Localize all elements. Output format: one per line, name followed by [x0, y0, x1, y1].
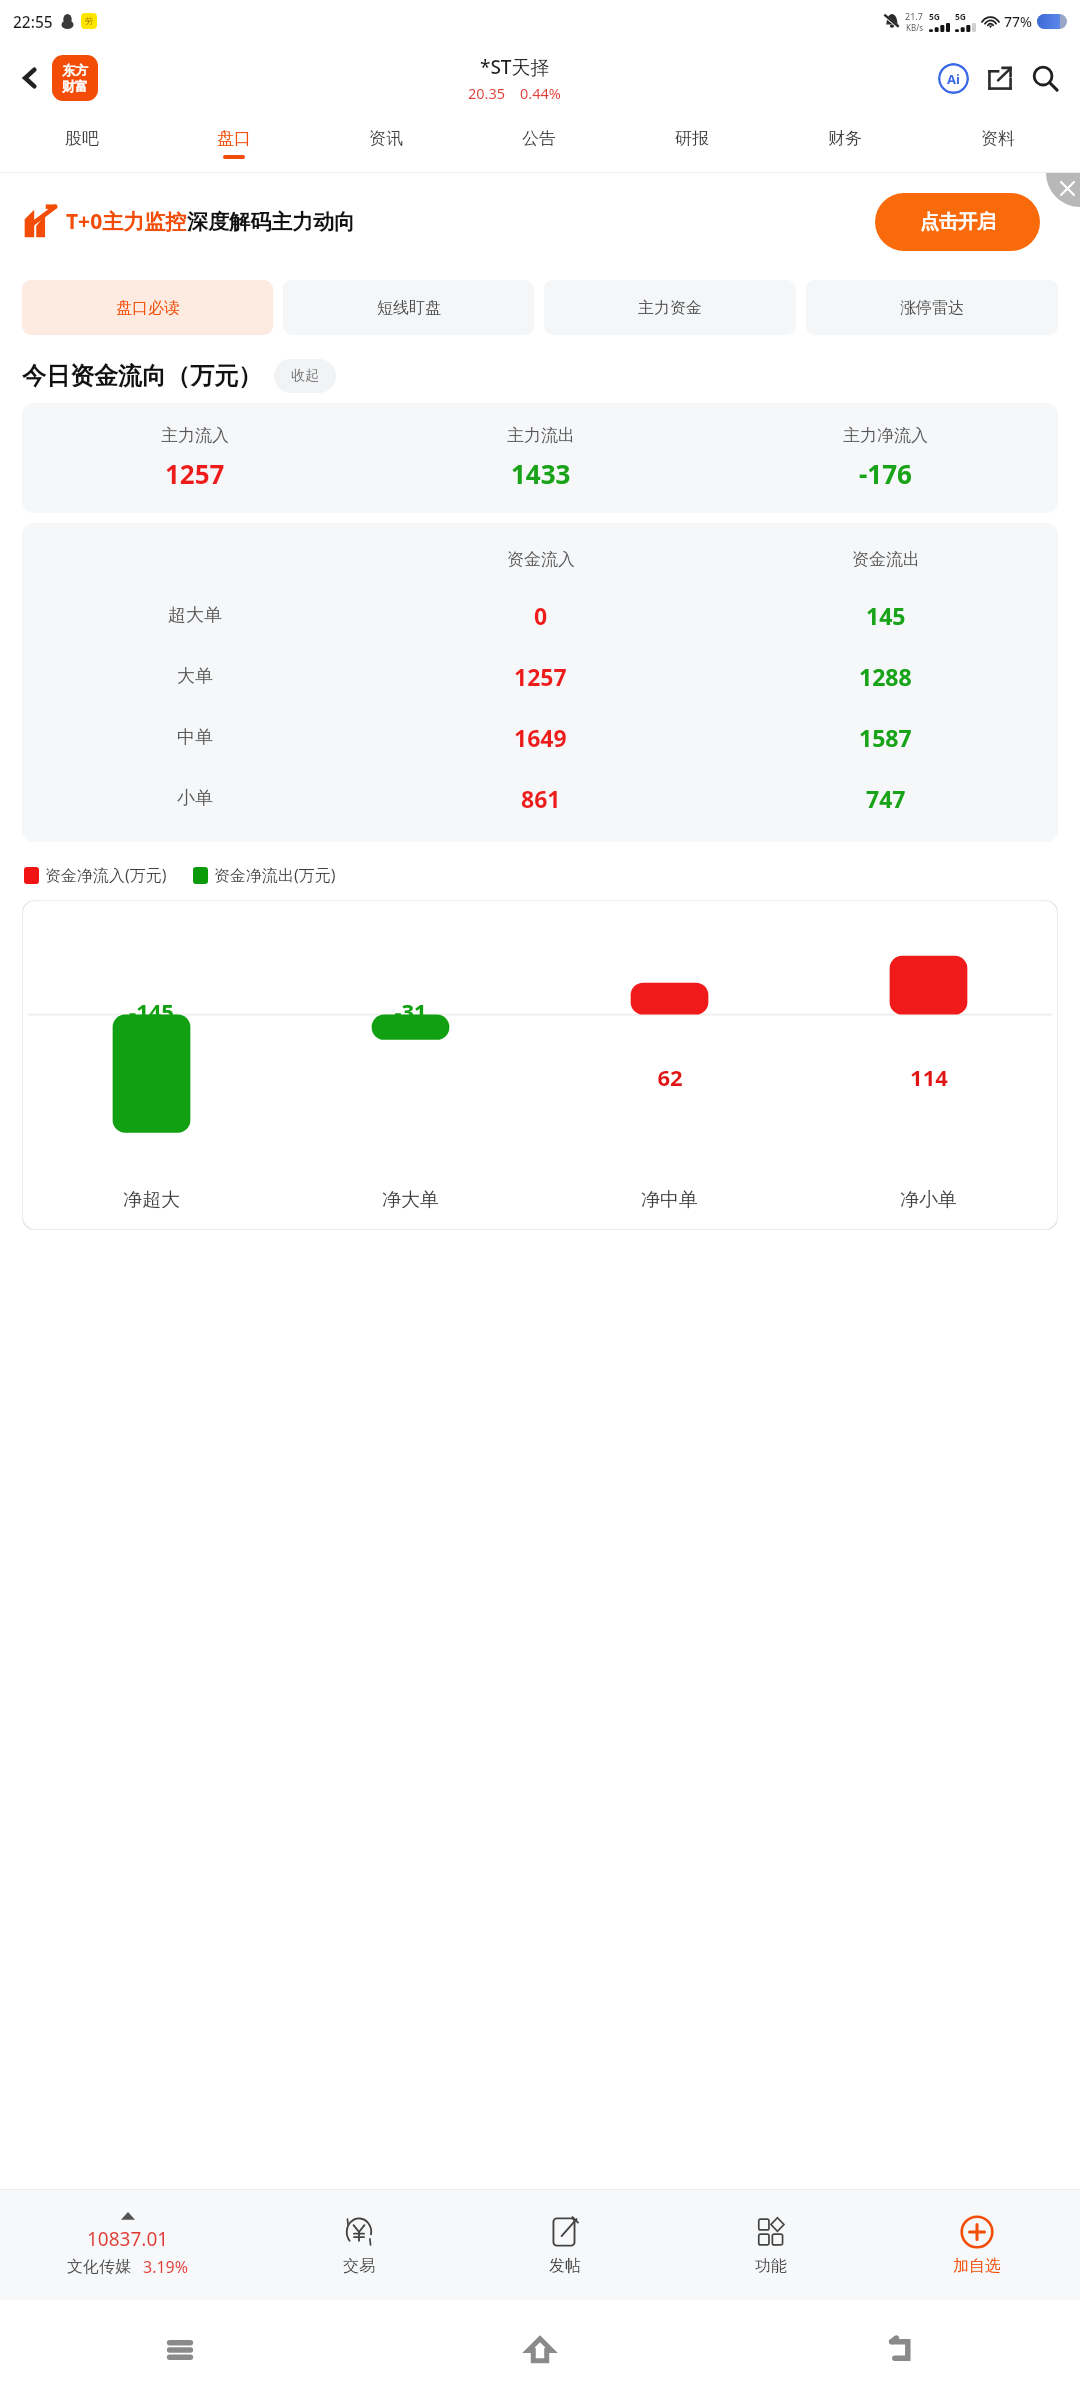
- staticText: 今日资金流向（万元）: [22, 361, 262, 391]
- staticText: 资金净流出(万元): [214, 864, 336, 886]
- button[interactable]: 交易: [256, 2190, 462, 2300]
- staticText: 62: [657, 1062, 683, 1092]
- staticText: 涨停雷达: [900, 298, 964, 318]
- staticText: Ai: [947, 70, 960, 88]
- button[interactable]: 收起: [274, 359, 336, 393]
- staticText: 盘口: [217, 128, 251, 149]
- staticText: 资料: [981, 128, 1015, 149]
- staticText: T+0主力监控: [66, 207, 187, 236]
- staticText: 77%: [1004, 12, 1032, 31]
- staticText: 文化传媒: [67, 2257, 131, 2277]
- button[interactable]: 研报: [615, 114, 768, 172]
- staticText: -31: [394, 996, 427, 1026]
- button[interactable]: Share: [980, 58, 1020, 98]
- staticText: 净超大: [123, 1188, 180, 1212]
- button[interactable]: 发帖: [462, 2190, 668, 2300]
- staticText: 小单: [177, 787, 213, 810]
- staticText: -176: [859, 456, 912, 491]
- staticText: 主力流出: [507, 425, 575, 446]
- staticText: 5G: [955, 11, 967, 23]
- staticText: 交易: [343, 2256, 375, 2276]
- button[interactable]: 盘口: [158, 114, 310, 172]
- staticText: 点击开启: [920, 210, 996, 234]
- staticText: *ST天择: [480, 54, 550, 80]
- button[interactable]: 点击开启: [875, 193, 1040, 251]
- button[interactable]: 功能: [668, 2190, 874, 2300]
- staticText: 财务: [828, 128, 862, 149]
- button[interactable]: 主力资金: [544, 280, 796, 335]
- button[interactable]: Close ad: [1046, 173, 1080, 207]
- staticText: 861: [521, 783, 561, 814]
- staticText: 公告: [522, 128, 556, 149]
- staticText: 1257: [514, 661, 567, 692]
- button[interactable]: 短线盯盘: [283, 280, 534, 335]
- staticText: 资讯: [369, 128, 403, 149]
- staticText: 发帖: [549, 2256, 581, 2276]
- staticText: 净小单: [900, 1188, 957, 1212]
- staticText: 股吧: [65, 128, 99, 149]
- staticText: 资金净流入(万元): [45, 864, 167, 886]
- button[interactable]: 财务: [768, 114, 921, 172]
- staticText: 资金流出: [852, 549, 920, 570]
- staticText: 资金流入: [507, 549, 575, 570]
- staticText: 加自选: [953, 2256, 1001, 2276]
- staticText: 20.35: [468, 83, 506, 103]
- button[interactable]: 盘口必读: [22, 280, 273, 335]
- staticText: KB/s: [906, 22, 923, 33]
- staticText: 3.19%: [143, 2256, 189, 2278]
- staticText: 财富: [62, 78, 88, 94]
- staticText: 净大单: [382, 1188, 439, 1212]
- staticText: 10837.01: [87, 2226, 169, 2252]
- staticText: 0: [534, 600, 548, 631]
- staticText: 大单: [177, 665, 213, 688]
- staticText: 盘口必读: [116, 298, 180, 318]
- staticText: 1587: [859, 722, 912, 753]
- staticText: 主力流入: [161, 425, 229, 446]
- staticText: 1433: [511, 456, 571, 491]
- staticText: 收起: [291, 367, 319, 385]
- staticText: 功能: [755, 2256, 787, 2276]
- staticText: -145: [129, 996, 174, 1026]
- button[interactable]: AI assistant: [932, 57, 974, 99]
- staticText: 145: [866, 600, 906, 631]
- staticText: 747: [866, 783, 906, 814]
- staticText: 1288: [859, 661, 912, 692]
- staticText: 东方: [62, 62, 88, 78]
- button[interactable]: 股吧: [6, 114, 158, 172]
- button[interactable]: 公告: [462, 114, 615, 172]
- staticText: 1649: [514, 722, 567, 753]
- staticText: 研报: [675, 128, 709, 149]
- staticText: 22:55: [13, 11, 53, 32]
- staticText: 21.7: [905, 10, 923, 22]
- staticText: 5G: [929, 11, 941, 23]
- button[interactable]: Home: [360, 2300, 720, 2400]
- button[interactable]: Back: [8, 56, 52, 100]
- staticText: 1257: [165, 456, 225, 491]
- button[interactable]: 资料: [921, 114, 1074, 172]
- button[interactable]: Recents: [0, 2300, 360, 2400]
- button[interactable]: 10837.01: [0, 2190, 256, 2300]
- staticText: 0.44%: [520, 83, 561, 103]
- button[interactable]: Search: [1024, 57, 1066, 99]
- staticText: 主力净流入: [843, 425, 928, 446]
- button[interactable]: 加自选: [874, 2190, 1080, 2300]
- staticText: 超大单: [168, 604, 222, 627]
- staticText: 中单: [177, 726, 213, 749]
- staticText: 短线盯盘: [377, 298, 441, 318]
- staticText: 劳: [85, 16, 93, 26]
- button[interactable]: East Money: [52, 55, 98, 101]
- staticText: 深度解码主力动向: [187, 209, 355, 235]
- button[interactable]: 资讯: [310, 114, 462, 172]
- staticText: 主力资金: [638, 298, 702, 318]
- staticText: 114: [910, 1062, 948, 1092]
- staticText: 净中单: [641, 1188, 698, 1212]
- button[interactable]: Back: [720, 2300, 1080, 2400]
- button[interactable]: 涨停雷达: [806, 280, 1058, 335]
